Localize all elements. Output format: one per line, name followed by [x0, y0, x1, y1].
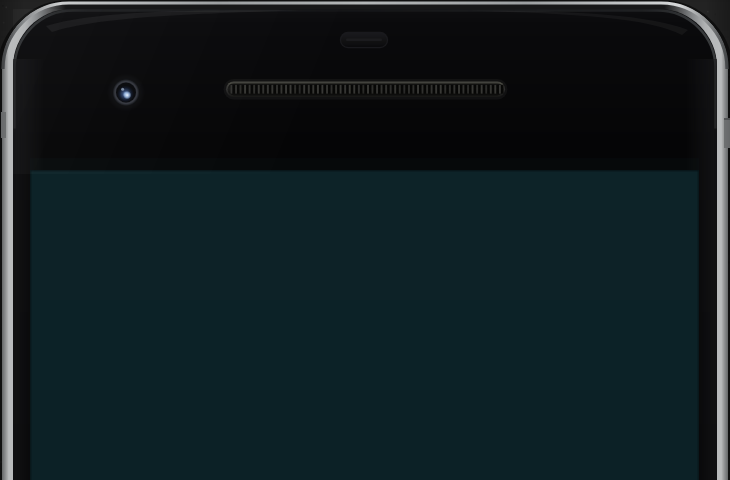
- button[interactable]: App screen: [0, 0, 730, 480]
